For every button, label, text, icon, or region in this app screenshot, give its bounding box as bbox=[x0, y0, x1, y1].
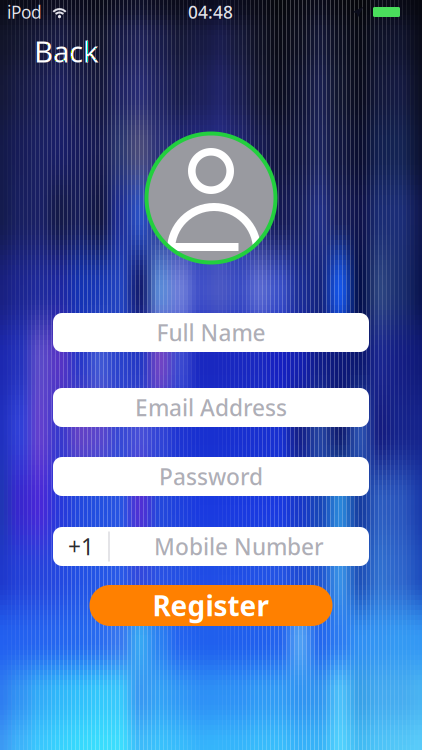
staticText: Full Name bbox=[156, 317, 265, 347]
button[interactable]: Password bbox=[53, 457, 369, 496]
staticText: Password bbox=[159, 461, 263, 491]
button[interactable]: +1 bbox=[53, 527, 369, 566]
button[interactable]: Back bbox=[0, 0, 126, 68]
staticText: Email Address bbox=[135, 392, 287, 422]
button[interactable]: Register bbox=[89, 585, 332, 626]
button[interactable]: Email Address bbox=[53, 388, 369, 427]
staticText: Back bbox=[34, 31, 99, 70]
button[interactable]: Full Name bbox=[53, 313, 369, 352]
staticText: +1 bbox=[68, 531, 94, 561]
staticText: iPod bbox=[7, 0, 42, 23]
staticText: 04:48 bbox=[188, 0, 233, 23]
staticText: Mobile Number bbox=[154, 531, 324, 561]
staticText: Register bbox=[152, 587, 269, 624]
